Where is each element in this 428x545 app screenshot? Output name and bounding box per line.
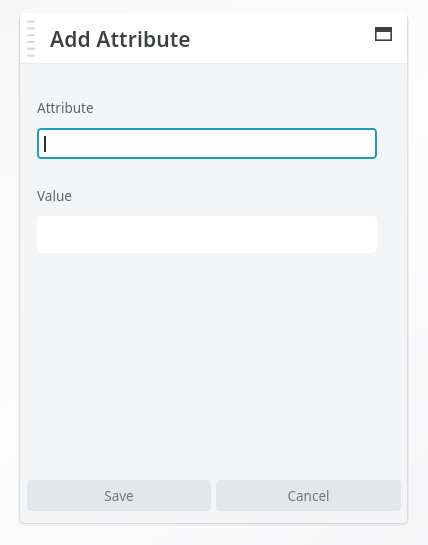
button[interactable]: Attribute input field: [37, 128, 377, 159]
button[interactable]: Toggle window size: [369, 20, 397, 48]
staticText: Value: [37, 187, 72, 205]
button[interactable]: Cancel: [216, 480, 401, 511]
staticText: Save: [104, 487, 134, 505]
button[interactable]: Save: [27, 480, 211, 511]
staticText: Add Attribute: [50, 25, 191, 54]
staticText: Cancel: [287, 487, 330, 505]
other: Drag handle: [24, 19, 38, 59]
staticText: Attribute: [37, 99, 94, 117]
